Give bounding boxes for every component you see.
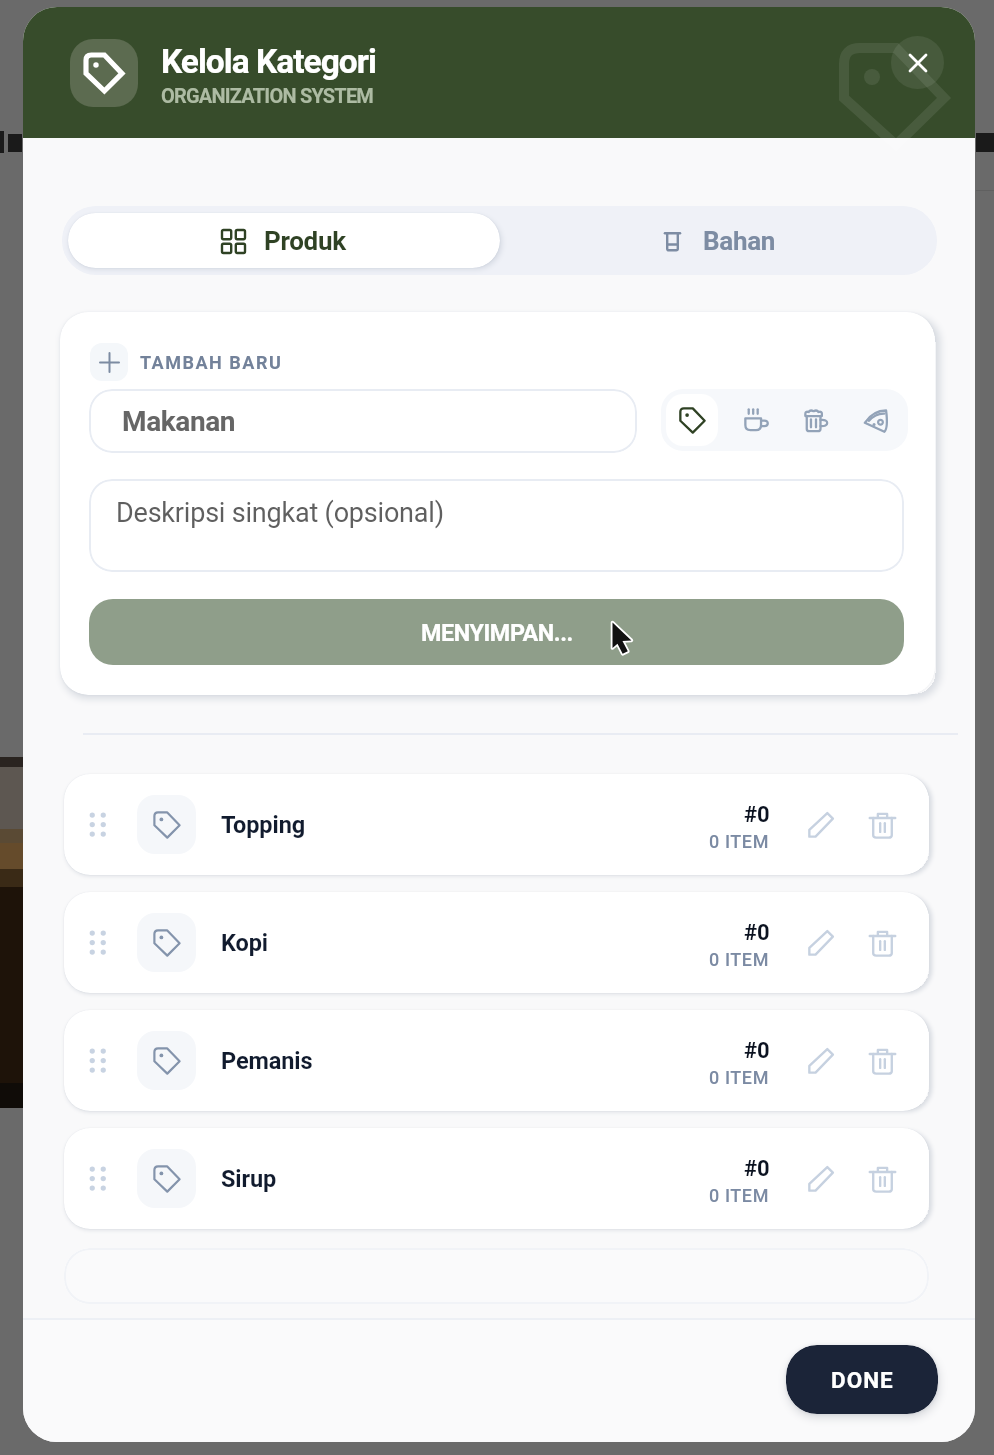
staticText: Topping bbox=[221, 811, 306, 839]
button[interactable]: Sirup bbox=[64, 1128, 929, 1229]
staticText: Deskripsi singkat (opsional) bbox=[116, 497, 444, 529]
button[interactable]: Pemanis bbox=[64, 1010, 929, 1111]
button[interactable]: MENYIMPAN... bbox=[89, 599, 904, 665]
button[interactable]: Edit bbox=[795, 1036, 845, 1086]
button[interactable]: Coffee icon bbox=[728, 392, 784, 448]
staticText: Pemanis bbox=[221, 1047, 313, 1075]
staticText: TAMBAH BARU bbox=[140, 352, 283, 373]
button[interactable]: Topping bbox=[64, 774, 929, 875]
staticText: 0 ITEM bbox=[709, 1185, 770, 1206]
button[interactable]: Pizza icon bbox=[848, 392, 904, 448]
staticText: Makanan bbox=[122, 405, 236, 438]
button[interactable]: Makanan bbox=[89, 389, 637, 453]
button[interactable]: Delete bbox=[857, 1154, 907, 1204]
button[interactable]: Close bbox=[891, 36, 944, 89]
button[interactable]: Produk bbox=[68, 213, 500, 268]
staticText: #0 bbox=[744, 802, 770, 828]
button[interactable]: Edit bbox=[795, 1154, 845, 1204]
button[interactable]: Delete bbox=[857, 800, 907, 850]
button[interactable]: Kopi bbox=[64, 892, 929, 993]
staticText: ORGANIZATION SYSTEM bbox=[161, 84, 374, 107]
button[interactable]: Delete bbox=[857, 1036, 907, 1086]
button[interactable]: Deskripsi singkat (opsional) bbox=[89, 479, 904, 572]
staticText: Produk bbox=[264, 226, 346, 256]
button[interactable]: DONE bbox=[786, 1345, 938, 1414]
staticText: MENYIMPAN... bbox=[421, 619, 573, 646]
staticText: 0 ITEM bbox=[709, 1067, 770, 1088]
staticText: Bahan bbox=[703, 226, 776, 256]
button[interactable]: Delete bbox=[857, 918, 907, 968]
staticText: Kopi bbox=[221, 929, 268, 957]
staticText: #0 bbox=[744, 1038, 770, 1064]
staticText: Kelola Kategori bbox=[161, 42, 376, 81]
button[interactable]: Bahan bbox=[500, 206, 937, 275]
staticText: 0 ITEM bbox=[709, 949, 770, 970]
button[interactable]: Beer icon bbox=[788, 392, 844, 448]
staticText: 0 ITEM bbox=[709, 831, 770, 852]
staticText: #0 bbox=[744, 1156, 770, 1182]
button[interactable]: Tag icon bbox=[666, 394, 718, 446]
button[interactable]: Edit bbox=[795, 918, 845, 968]
staticText: #0 bbox=[744, 920, 770, 946]
staticText: DONE bbox=[831, 1367, 894, 1393]
staticText: Sirup bbox=[221, 1165, 277, 1193]
button[interactable]: Edit bbox=[795, 800, 845, 850]
